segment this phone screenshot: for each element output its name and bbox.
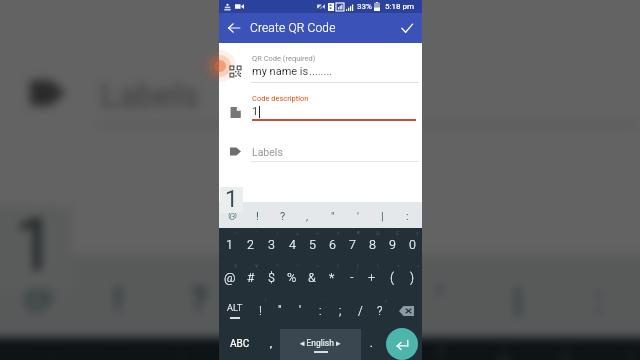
button[interactable]: Navigate up	[222, 13, 245, 43]
button[interactable]: ,	[295, 203, 320, 229]
button[interactable]: ¿	[370, 294, 390, 327]
button[interactable]: '	[290, 294, 310, 327]
staticText: /	[358, 304, 363, 318]
button[interactable]: °	[282, 261, 302, 294]
staticText: ×	[337, 230, 340, 236]
button[interactable]: Enter	[386, 328, 418, 360]
staticText: 1	[225, 186, 238, 212]
button[interactable]: ¢	[581, 338, 640, 360]
button[interactable]: \	[362, 261, 382, 294]
button[interactable]: |	[370, 203, 395, 229]
button[interactable]: ൫	[220, 202, 245, 228]
button[interactable]: ¶	[342, 228, 362, 261]
staticText: !	[259, 304, 262, 318]
staticText: 9	[389, 237, 396, 252]
button[interactable]: '	[345, 203, 370, 229]
staticText: ?	[377, 304, 383, 318]
button[interactable]: ×	[322, 228, 342, 261]
button[interactable]: Labels	[0, 66, 640, 136]
staticText: %	[287, 270, 297, 285]
staticText: !	[256, 210, 259, 223]
button[interactable]: <	[382, 261, 402, 294]
button[interactable]: ൫	[0, 254, 78, 338]
button[interactable]: ALT	[219, 294, 250, 327]
button[interactable]: {	[322, 261, 342, 294]
staticText: ,	[306, 210, 309, 223]
button[interactable]: `	[62, 338, 129, 360]
staticText: ~	[234, 230, 238, 236]
staticText: }	[357, 263, 359, 269]
button[interactable]: Labels	[219, 143, 422, 165]
button[interactable]: |	[129, 338, 197, 360]
button[interactable]: ^	[261, 261, 282, 294]
button[interactable]: ?	[158, 258, 238, 341]
button[interactable]: Save	[395, 13, 418, 43]
staticText: ALT	[227, 302, 243, 313]
button[interactable]: ,	[238, 258, 318, 341]
button[interactable]: /	[350, 294, 370, 327]
button[interactable]: ;	[330, 294, 350, 327]
button[interactable]: ¢	[402, 228, 422, 261]
button[interactable]: ¡	[250, 294, 270, 327]
button[interactable]: ∆	[362, 228, 382, 261]
button[interactable]: Code description	[219, 92, 422, 122]
button[interactable]: }	[342, 261, 362, 294]
button[interactable]: QR Code (required)	[219, 52, 422, 83]
button[interactable]: ~	[219, 228, 240, 261]
button[interactable]: `	[240, 228, 261, 261]
staticText: QR Code (required)	[252, 54, 316, 63]
staticText: *	[329, 270, 335, 285]
staticText: ABC	[230, 338, 250, 350]
button[interactable]: '	[398, 258, 478, 341]
staticText: √	[241, 344, 254, 360]
staticText: -	[350, 270, 354, 285]
staticText: ?	[190, 280, 209, 322]
staticText: |	[277, 230, 279, 236]
staticText: =	[316, 263, 320, 269]
button[interactable]: "	[270, 294, 290, 327]
button[interactable]: ◂ English ▸	[280, 329, 361, 360]
button[interactable]: |	[261, 228, 282, 261]
button[interactable]: "	[318, 258, 398, 341]
button[interactable]: >	[402, 261, 422, 294]
button[interactable]: =	[302, 261, 322, 294]
button[interactable]: :	[558, 258, 638, 341]
button[interactable]: €	[219, 261, 240, 294]
button[interactable]: £	[517, 338, 581, 360]
staticText: Code description	[252, 94, 309, 103]
button[interactable]: ∆	[453, 338, 517, 360]
staticText: 1	[14, 203, 56, 286]
button[interactable]: !	[245, 203, 270, 229]
button[interactable]: :	[395, 203, 420, 229]
staticText: ൫	[24, 283, 53, 312]
staticText: &	[308, 270, 316, 285]
button[interactable]: ABC	[219, 327, 261, 360]
button[interactable]: ÷	[261, 338, 325, 360]
button[interactable]: ,	[261, 327, 280, 360]
button[interactable]: Backspace	[390, 294, 422, 327]
staticText: ÷	[316, 230, 320, 236]
button[interactable]: !	[78, 258, 158, 341]
button[interactable]: |	[478, 258, 558, 341]
button[interactable]: √	[282, 228, 302, 261]
button[interactable]: √	[197, 338, 261, 360]
button[interactable]: "	[320, 203, 345, 229]
button[interactable]: …	[310, 294, 330, 327]
staticText: "	[353, 280, 366, 322]
button[interactable]: ×	[325, 338, 389, 360]
staticText: "	[331, 210, 335, 223]
staticText: 8	[369, 237, 376, 252]
button[interactable]: ~	[0, 338, 62, 360]
staticText: 7	[349, 237, 356, 252]
button[interactable]: ÷	[302, 228, 322, 261]
button[interactable]: ¥	[240, 261, 261, 294]
button[interactable]: ?	[270, 203, 295, 229]
button[interactable]: .	[362, 327, 381, 360]
button[interactable]: £	[382, 228, 402, 261]
button[interactable]: ¶	[389, 338, 453, 360]
staticText: £	[396, 230, 400, 236]
